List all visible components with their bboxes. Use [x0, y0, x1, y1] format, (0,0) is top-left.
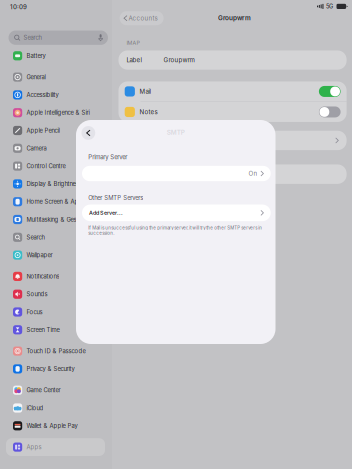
button[interactable]: Camera — [0, 139, 105, 157]
staticText: IMAP — [126, 39, 139, 46]
button[interactable]: Apple Pencil — [0, 122, 105, 139]
staticText: iCloud — [26, 404, 43, 412]
button[interactable]: Home Screen & App Library — [0, 193, 105, 211]
staticText: Camera — [26, 145, 46, 152]
button[interactable]: Accounts — [120, 11, 164, 25]
button[interactable]: Sounds — [0, 285, 105, 303]
staticText: Notifications — [26, 273, 59, 280]
staticText: SMTP — [167, 129, 185, 136]
button[interactable]: Game Center — [0, 381, 105, 399]
button[interactable]: Add Server... — [82, 205, 271, 221]
button[interactable]: Control Centre — [0, 157, 105, 175]
staticText: General — [26, 74, 45, 81]
staticText: Search — [26, 234, 44, 241]
button[interactable]: Notifications — [0, 267, 105, 285]
staticText: Apple Intelligence & Siri — [26, 109, 89, 116]
staticText: Wallpaper — [26, 252, 52, 259]
staticText: 5G — [326, 3, 333, 10]
staticText: Other SMTP Servers — [88, 194, 143, 201]
staticText: Add Server... — [89, 210, 123, 216]
button[interactable]: General — [0, 68, 105, 86]
staticText: Apps — [26, 444, 41, 451]
button[interactable]: Touch ID & Passcode — [0, 342, 105, 360]
button[interactable]: iCloud — [0, 399, 105, 417]
staticText: Multitasking & Gestures — [26, 216, 89, 223]
staticText: Wallet & Apple Pay — [26, 422, 77, 429]
staticText: Accounts — [129, 14, 158, 22]
staticText: If Mail is unsuccessful using the primar… — [88, 225, 262, 236]
button[interactable]: Wallpaper — [0, 246, 105, 264]
button[interactable]: Wallet & Apple Pay — [0, 417, 105, 435]
button[interactable]: Back — [81, 125, 96, 141]
staticText: Touch ID & Passcode — [26, 348, 85, 355]
staticText: Display & Brightness — [26, 180, 81, 187]
staticText: Apple Pencil — [26, 127, 59, 134]
staticText: Groupwrm — [163, 56, 194, 64]
button[interactable]: On — [82, 166, 271, 181]
button[interactable]: Search — [0, 228, 105, 246]
staticText: On — [248, 170, 257, 177]
button[interactable]: Accessibility — [0, 86, 105, 104]
staticText: Accessibility — [26, 91, 58, 98]
staticText: Mail — [139, 88, 150, 95]
button[interactable]: Screen Time — [0, 321, 105, 339]
staticText: Game Center — [26, 387, 60, 394]
staticText: Label — [126, 56, 141, 64]
staticText: Search — [23, 34, 41, 41]
button[interactable]: Privacy & Security — [0, 360, 105, 378]
staticText: 10:09 — [10, 3, 27, 11]
button[interactable]: Apple Intelligence & Siri — [0, 104, 105, 122]
staticText: Privacy & Security — [26, 365, 74, 372]
button[interactable]: Display & Brightness — [0, 175, 105, 193]
staticText: Control Centre — [26, 163, 65, 170]
staticText: Home Screen & App Library — [26, 198, 101, 205]
staticText: Groupwrm — [218, 14, 251, 22]
staticText: Screen Time — [26, 326, 59, 333]
staticText: Primary Server — [88, 153, 127, 161]
button[interactable]: Apps — [0, 438, 105, 456]
button[interactable]: Battery — [0, 47, 105, 65]
button[interactable]: Multitasking & Gestures — [0, 211, 105, 228]
staticText: Battery — [26, 52, 45, 59]
staticText: Focus — [26, 308, 42, 316]
button[interactable]: Focus — [0, 303, 105, 321]
staticText: Sounds — [26, 291, 47, 298]
staticText: Notes — [139, 108, 157, 116]
